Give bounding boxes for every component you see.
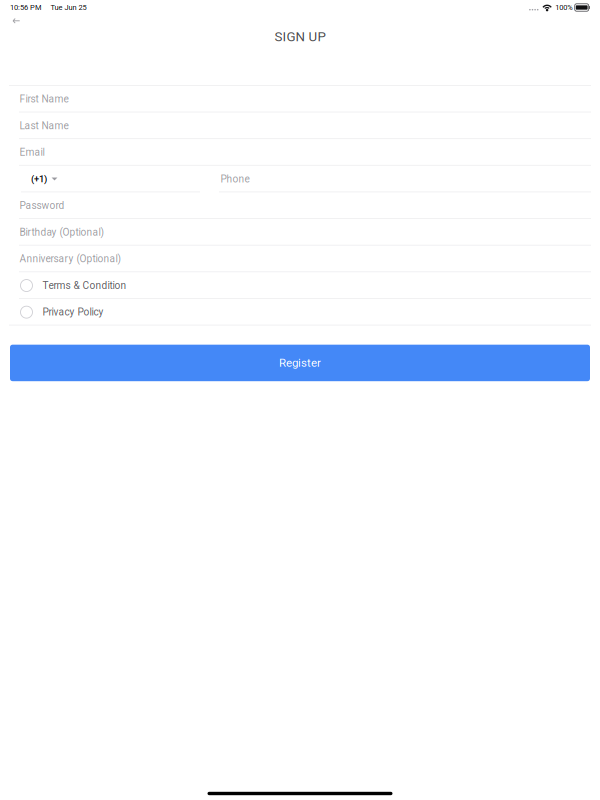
button[interactable]: Password: [0, 192, 600, 219]
staticText: (+1): [31, 173, 47, 184]
button[interactable]: Birthday (Optional): [0, 219, 600, 246]
staticText: Password: [19, 200, 64, 212]
button[interactable]: Register: [10, 345, 590, 381]
button[interactable]: Anniversary (Optional): [0, 246, 600, 272]
button[interactable]: Terms & Condition: [0, 272, 600, 299]
button[interactable]: (+1): [0, 166, 200, 192]
staticText: SIGN UP: [274, 29, 325, 45]
staticText: Birthday (Optional): [19, 226, 104, 238]
button[interactable]: First Name: [0, 86, 600, 112]
staticText: Last Name: [19, 120, 68, 132]
staticText: Anniversary (Optional): [19, 253, 121, 265]
button[interactable]: Back: [0, 13, 31, 29]
staticText: 100%: [555, 3, 572, 12]
button[interactable]: Email: [0, 139, 600, 166]
staticText: Terms & Condition: [42, 280, 126, 291]
button[interactable]: Phone: [200, 166, 600, 192]
staticText: Privacy Policy: [42, 306, 103, 318]
staticText: Tue Jun 25: [50, 3, 86, 12]
button[interactable]: Privacy Policy: [0, 299, 600, 325]
staticText: Phone: [220, 173, 249, 185]
staticText: 10:56 PM: [10, 3, 42, 12]
staticText: Register: [279, 356, 321, 370]
button[interactable]: Last Name: [0, 112, 600, 139]
staticText: First Name: [19, 93, 68, 105]
staticText: Email: [19, 146, 44, 158]
